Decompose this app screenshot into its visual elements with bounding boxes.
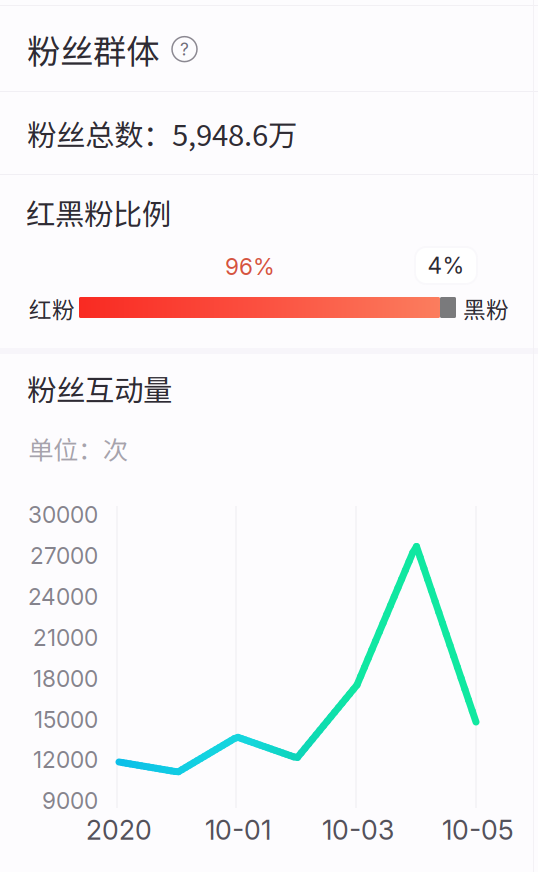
staticText: 红粉	[29, 292, 75, 325]
staticText: ?	[180, 39, 189, 60]
staticText: 10-01	[205, 814, 271, 846]
staticText: 粉丝总数：5,948.6万	[27, 112, 297, 154]
staticText: 9000	[42, 787, 98, 814]
staticText: 24000	[28, 583, 98, 610]
staticText: 黑粉	[463, 292, 509, 325]
staticText: 单位：次	[28, 430, 128, 467]
staticText: 27000	[30, 542, 98, 569]
staticText: 96%	[225, 253, 275, 280]
staticText: 15000	[34, 706, 98, 733]
staticText: 红黑粉比例	[26, 191, 171, 233]
staticText: 12000	[33, 746, 98, 773]
staticText: 4%	[427, 252, 464, 279]
staticText: 2020	[86, 814, 152, 846]
staticText: 21000	[33, 624, 98, 651]
staticText: 粉丝互动量	[27, 367, 172, 409]
staticText: 30000	[28, 501, 98, 528]
staticText: 粉丝群体	[27, 25, 159, 73]
staticText: 10-03	[322, 814, 394, 846]
button[interactable]: 粉丝群体 说明	[27, 25, 197, 73]
staticText: 18000	[33, 665, 98, 692]
staticText: 10-05	[442, 814, 514, 846]
button[interactable]: 4%	[414, 246, 478, 285]
